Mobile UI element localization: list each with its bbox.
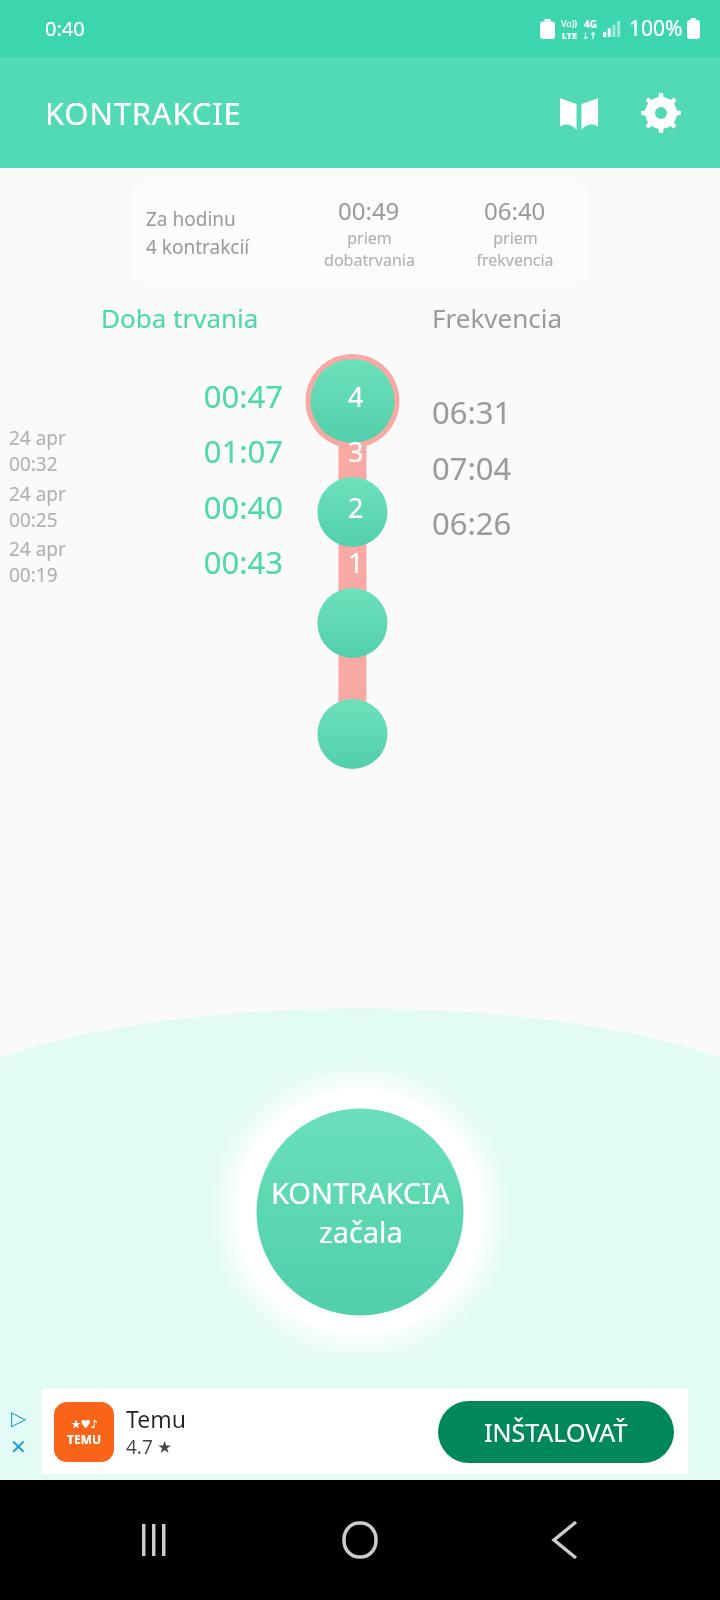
staticText: 1 bbox=[348, 544, 364, 581]
staticText: 00:47 bbox=[68, 375, 283, 417]
staticText: priem bbox=[493, 227, 538, 249]
staticText: 24 apr bbox=[9, 536, 66, 562]
staticText: 06:26 bbox=[432, 502, 512, 544]
staticText: 0:40 bbox=[45, 15, 85, 42]
staticText: 4G bbox=[584, 17, 597, 31]
staticText: 24 apr bbox=[9, 425, 66, 451]
staticText: 00:19 bbox=[9, 562, 58, 588]
staticText: 24 apr bbox=[9, 481, 66, 507]
staticText: ✕ bbox=[10, 1435, 27, 1458]
staticText: KONTRAKCIA bbox=[271, 1173, 450, 1212]
button[interactable]: Za hodinu bbox=[132, 182, 588, 283]
staticText: 01:07 bbox=[68, 430, 283, 472]
button[interactable]: Recents bbox=[105, 1490, 205, 1590]
staticText: Doba trvania bbox=[101, 300, 259, 335]
staticText: 4 bbox=[348, 378, 364, 415]
staticText: ★♥♪ bbox=[71, 1418, 98, 1431]
staticText: 06:31 bbox=[432, 391, 512, 433]
staticText: 2 bbox=[348, 489, 364, 526]
staticText: 00:49 bbox=[338, 194, 400, 227]
staticText: KONTRAKCIE bbox=[45, 92, 242, 134]
button[interactable]: 00:47 bbox=[0, 344, 720, 448]
button[interactable]: 24 apr bbox=[0, 455, 720, 559]
staticText: 100% bbox=[629, 14, 683, 43]
staticText: Vo)) bbox=[561, 17, 578, 29]
staticText: ▷ bbox=[11, 1406, 27, 1429]
button[interactable]: INŠTALOVAŤ bbox=[438, 1401, 674, 1463]
staticText: LTE bbox=[562, 29, 578, 41]
staticText: 00:32 bbox=[9, 451, 58, 477]
staticText: frekvencia bbox=[476, 249, 554, 271]
staticText: 4.7 bbox=[126, 1434, 153, 1460]
button[interactable]: Home bbox=[310, 1490, 410, 1590]
staticText: Za hodinu bbox=[146, 206, 236, 232]
staticText: začala bbox=[319, 1212, 403, 1251]
staticText: 00:43 bbox=[68, 541, 283, 583]
staticText: INŠTALOVAŤ bbox=[484, 1415, 628, 1449]
staticText: 4 kontrakcií bbox=[146, 234, 250, 260]
button[interactable]: Back bbox=[515, 1490, 615, 1590]
staticText: ↓↑ bbox=[582, 31, 598, 41]
staticText: Frekvencia bbox=[432, 300, 562, 335]
button[interactable]: 24 apr bbox=[0, 399, 720, 503]
staticText: priem bbox=[347, 227, 392, 249]
button[interactable]: KONTRAKCIA bbox=[210, 1062, 510, 1362]
button[interactable]: Settings bbox=[620, 68, 702, 158]
button[interactable]: 24 apr bbox=[0, 510, 720, 614]
staticText: Temu bbox=[126, 1403, 186, 1434]
staticText: 06:40 bbox=[484, 194, 546, 227]
staticText: dobatrvania bbox=[324, 249, 415, 271]
staticText: TEMU bbox=[67, 1431, 102, 1447]
staticText: 00:25 bbox=[9, 507, 58, 533]
staticText: ★ bbox=[157, 1437, 173, 1457]
staticText: 3 bbox=[348, 433, 364, 470]
button[interactable]: ★♥♪ bbox=[42, 1389, 688, 1474]
staticText: 07:04 bbox=[432, 447, 512, 489]
button[interactable]: Guide bbox=[538, 68, 620, 158]
staticText: 00:40 bbox=[68, 486, 283, 528]
